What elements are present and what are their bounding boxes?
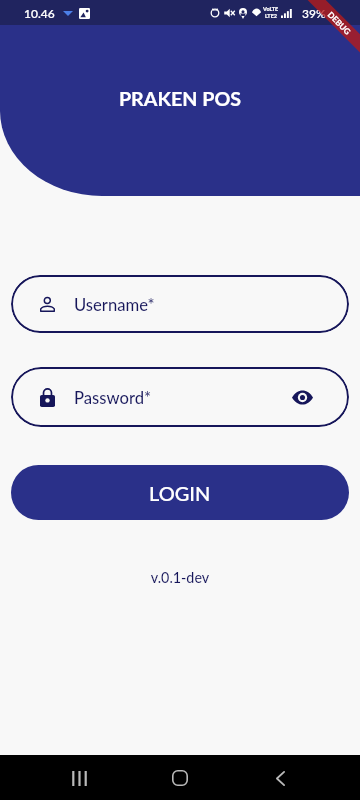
button[interactable]: Home	[159, 757, 201, 799]
staticText: DEBUG	[326, 10, 353, 37]
staticText: 39%	[302, 6, 326, 20]
staticText: 10.46	[24, 6, 55, 20]
staticText: LOGIN	[149, 481, 211, 505]
button[interactable]: LOGIN	[11, 465, 349, 520]
button[interactable]: Username*	[11, 275, 349, 333]
button[interactable]: Password*	[11, 367, 349, 427]
staticText: LTE2	[265, 13, 278, 20]
staticText: v.0.1-dev	[0, 569, 360, 586]
staticText: VoLTE	[263, 6, 279, 13]
button[interactable]: Recent apps	[57, 757, 99, 799]
staticText: Username*	[74, 295, 155, 315]
staticText: PRAKEN POS	[0, 87, 360, 111]
button[interactable]: Show password	[289, 384, 315, 410]
staticText: Password*	[74, 388, 152, 408]
button[interactable]: Back	[259, 757, 301, 799]
